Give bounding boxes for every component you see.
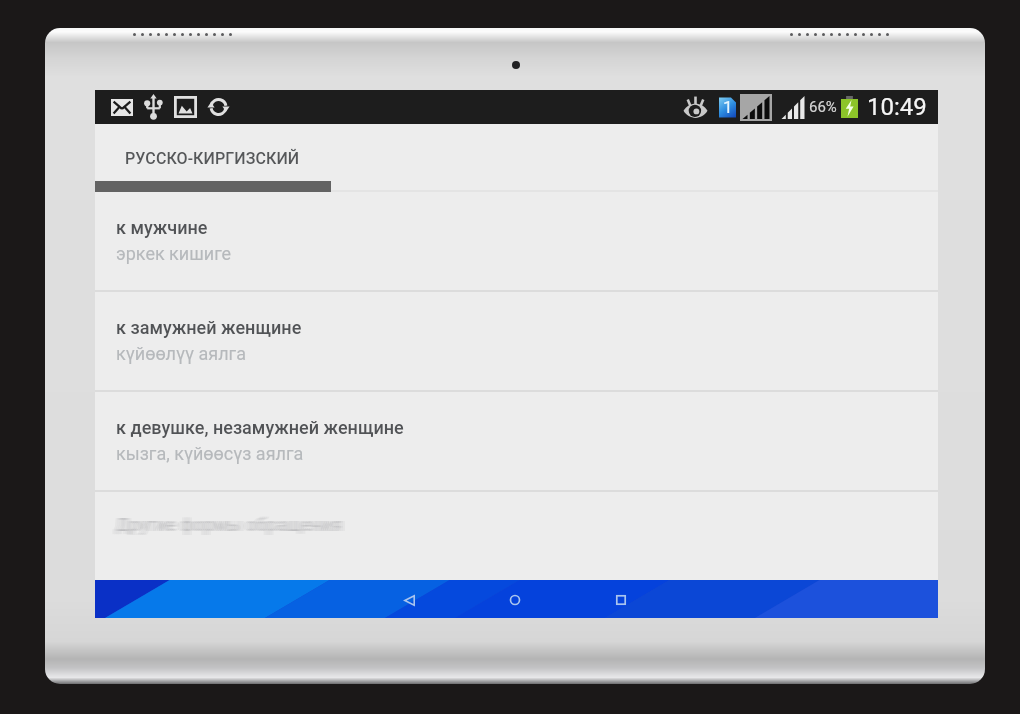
staticText: Другие формы обращения xyxy=(112,514,339,535)
button[interactable]: Home xyxy=(462,580,568,618)
staticText: 1 xyxy=(723,97,733,117)
staticText: Другие формы обращения xyxy=(120,514,347,535)
staticText: 10:49 xyxy=(867,93,927,121)
button[interactable]: Back xyxy=(356,580,462,618)
button[interactable]: к девушке, незамужней женщине xyxy=(95,392,938,490)
staticText: к девушке, незамужней женщине xyxy=(116,417,404,438)
button[interactable]: к мужчине xyxy=(95,192,938,290)
button[interactable]: РУССКО-КИРГИЗСКИЙ xyxy=(95,124,331,192)
button[interactable]: к замужней женщине xyxy=(95,292,938,390)
staticText: к мужчине xyxy=(116,217,208,238)
staticText: күйөөлүү аялга xyxy=(116,343,246,364)
staticText: РУССКО-КИРГИЗСКИЙ xyxy=(125,149,300,168)
button[interactable]: Recents xyxy=(568,580,674,618)
staticText: эркек кишиге xyxy=(116,243,232,264)
staticText: Другие формы обращения xyxy=(118,514,345,535)
staticText: кызга, күйөөсүз аялга xyxy=(116,443,304,464)
staticText: Другие формы обращения xyxy=(114,514,341,535)
staticText: к замужней женщине xyxy=(116,317,302,338)
button[interactable]: Другие формы обращения xyxy=(95,492,938,550)
staticText: Другие формы обращения xyxy=(116,514,343,535)
staticText: 66% xyxy=(809,98,837,116)
